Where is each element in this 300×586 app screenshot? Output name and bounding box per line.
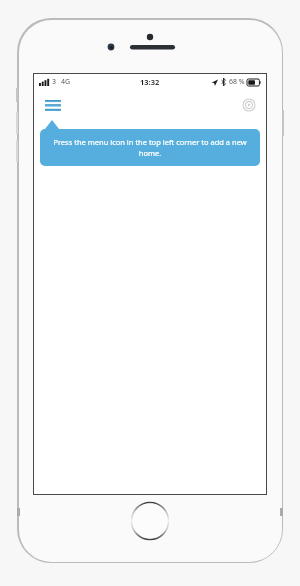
staticText: 4G — [61, 77, 71, 87]
staticText: Press the menu icon in the top left corn… — [52, 137, 248, 158]
staticText: 13:32 — [140, 77, 160, 87]
staticText: 68 % — [229, 77, 245, 87]
button[interactable]: Open menu — [42, 94, 64, 116]
staticText: 3 — [52, 77, 57, 87]
button[interactable]: Settings — [239, 95, 259, 115]
button[interactable]: Press the menu icon in the top left corn… — [40, 129, 260, 166]
